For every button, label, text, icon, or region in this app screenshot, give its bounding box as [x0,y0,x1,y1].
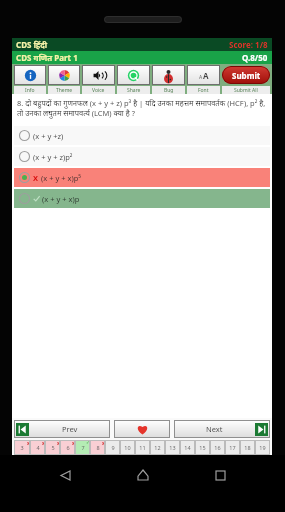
button[interactable]: Bug [152,86,185,94]
staticText: Theme [56,87,73,94]
staticText: X [33,173,39,183]
button[interactable]: 15 [195,440,210,455]
staticText: 3 [20,444,24,451]
staticText: Submit [232,70,261,81]
staticText: CDS गणित Part 1 [16,52,78,63]
staticText: (x + y + z)p² [33,152,73,162]
button[interactable]: (x + y + z)p² [14,147,270,166]
staticText: A [199,74,203,81]
staticText: 18 [244,444,251,451]
staticText: x [42,440,45,446]
staticText: 17 [229,444,236,451]
button[interactable]: 18 [240,440,255,455]
button[interactable]: Share [117,65,150,85]
button[interactable]: Info [14,65,46,85]
button[interactable]: 8 [90,440,105,455]
button[interactable]: 3 [14,440,30,455]
button[interactable]: Font [187,65,220,85]
button[interactable]: 7 [75,440,90,455]
button[interactable]: (x + y +z) [14,126,270,145]
button[interactable]: (x + y + x)p [14,189,270,208]
button[interactable]: 6 [60,440,75,455]
staticText: 4 [36,444,40,451]
staticText: Prev [62,424,78,434]
staticText: 13 [169,444,176,451]
button[interactable]: 17 [225,440,240,455]
button[interactable]: 4 [30,440,45,455]
staticText: 8 [96,444,100,451]
button[interactable]: Submit [222,66,270,84]
button[interactable]: 5 [45,440,60,455]
staticText: Bug [164,87,174,94]
staticText: 14 [184,444,191,451]
staticText: (x + y + x)p [42,194,80,204]
button[interactable]: Font [187,86,220,94]
button[interactable]: X [14,168,270,187]
button[interactable]: Back [53,463,77,487]
staticText: (x + y + x)p⁵ [41,173,81,183]
staticText: 10 [124,444,131,451]
button[interactable]: Voice [82,65,115,85]
button[interactable]: Favourite [114,420,170,438]
staticText: 7 [81,444,85,451]
staticText: 9 [111,444,115,451]
button[interactable]: 10 [120,440,135,455]
staticText: CDS हिंदी [16,39,48,50]
staticText: 16 [214,444,221,451]
staticText: A [203,70,209,81]
button[interactable]: Submit All [222,86,270,94]
button[interactable]: Home [131,463,155,487]
button[interactable]: 16 [210,440,225,455]
button[interactable]: 13 [165,440,180,455]
staticText: 6 [66,444,70,451]
staticText: Font [198,87,209,94]
button[interactable]: 11 [135,440,150,455]
staticText: x [72,440,75,446]
button[interactable]: Recents [208,463,232,487]
staticText: Next [206,424,223,434]
staticText: 8. दो बहुपदों का गुणनफल (x + y + z) p³ ह… [17,98,267,118]
button[interactable]: Info [14,86,46,94]
button[interactable]: Voice [82,86,115,94]
staticText: Voice [92,87,105,94]
staticText: 19 [259,444,266,451]
staticText: ✓ [86,440,90,445]
staticText: Q.8/50 [242,52,268,63]
staticText: Share [127,87,141,94]
button[interactable]: 14 [180,440,195,455]
button[interactable]: 19 [255,440,270,455]
staticText: 11 [139,444,146,451]
button[interactable]: Prev [14,420,110,438]
button[interactable]: Theme [48,65,80,85]
staticText: Score: 1/8 [229,39,268,50]
staticText: Info [25,87,35,94]
button[interactable]: Theme [48,86,80,94]
staticText: 5 [51,444,55,451]
button[interactable]: 9 [105,440,120,455]
staticText: (x + y +z) [33,131,64,141]
staticText: x [102,440,105,446]
staticText: 15 [199,444,206,451]
staticText: x [27,440,30,446]
staticText: x [57,440,60,446]
staticText: Submit All [234,87,258,94]
button[interactable]: Share [117,86,150,94]
button[interactable]: Bug [152,65,185,85]
button[interactable]: Next [174,420,270,438]
staticText: 12 [154,444,161,451]
button[interactable]: 12 [150,440,165,455]
